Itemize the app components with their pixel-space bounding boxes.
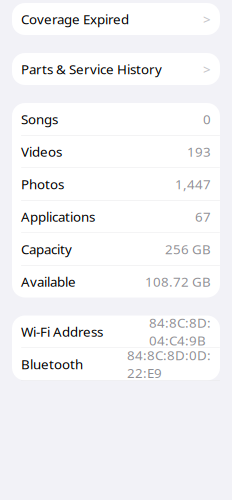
staticText: Coverage Expired	[21, 10, 129, 28]
button[interactable]: Coverage Expired	[12, 3, 220, 35]
staticText: 193	[187, 143, 211, 160]
staticText: Available	[21, 273, 76, 290]
staticText: Parts & Service History	[21, 60, 162, 78]
staticText: Photos	[21, 175, 64, 193]
staticText: Videos	[21, 143, 62, 160]
staticText: Bluetooth	[21, 355, 83, 373]
staticText: >	[203, 60, 211, 78]
staticText: 84:8C:8D:0D:22:E9	[127, 346, 211, 382]
staticText: 0	[203, 110, 211, 128]
staticText: 256 GB	[165, 240, 211, 258]
button[interactable]: Parts & Service History	[12, 53, 220, 85]
staticText: 1,447	[175, 175, 211, 193]
staticText: 67	[195, 208, 211, 225]
staticText: Wi-Fi Address	[21, 323, 103, 340]
staticText: Songs	[21, 110, 58, 128]
staticText: Capacity	[21, 240, 72, 258]
staticText: 108.72 GB	[145, 273, 211, 290]
staticText: >	[203, 10, 211, 28]
staticText: 84:8C:8D:04:C4:9B	[149, 314, 211, 349]
staticText: Applications	[21, 208, 95, 225]
